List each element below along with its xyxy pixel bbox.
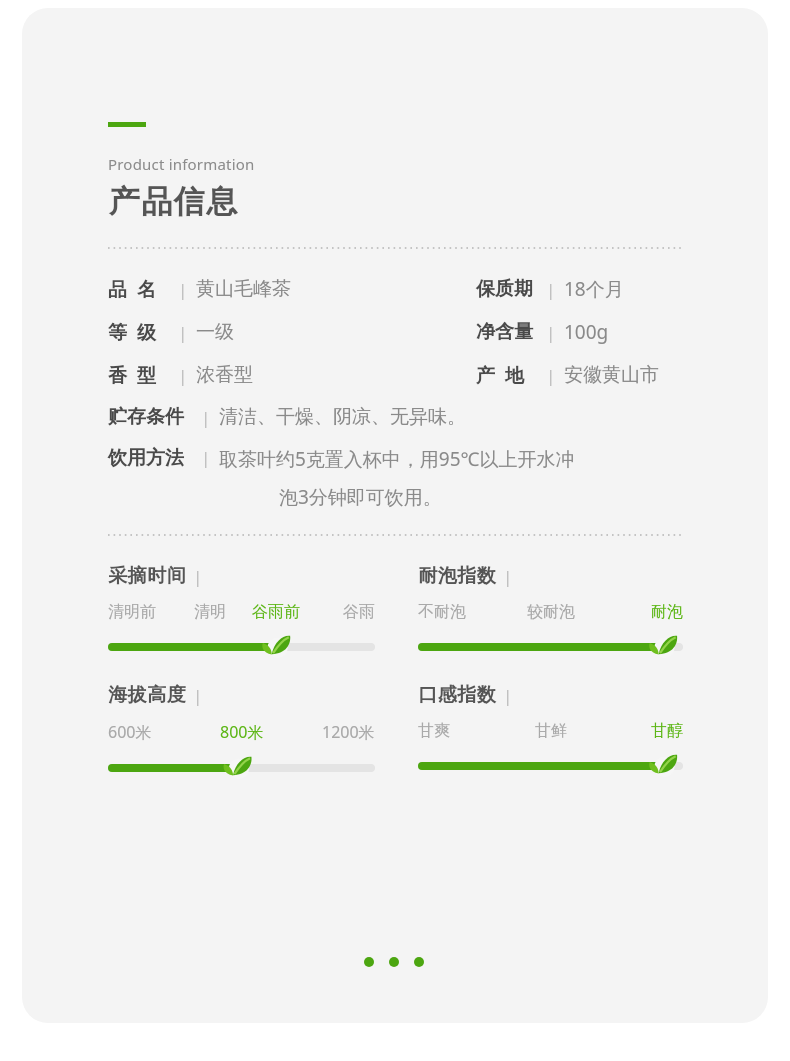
staticText: 耐泡 [651, 602, 683, 622]
staticText: | [193, 684, 203, 707]
button[interactable]: 口感指数 [418, 683, 683, 776]
staticText: Product information [108, 154, 255, 174]
button[interactable]: 产 地 [476, 362, 659, 388]
button[interactable]: 海拔高度 [108, 683, 375, 778]
button[interactable]: 香 型 [108, 362, 253, 388]
staticText: 安徽黄山市 [564, 363, 659, 387]
staticText: 产 地 [476, 362, 524, 388]
button[interactable]: 品 名 [108, 276, 291, 302]
staticText: 不耐泡 [418, 602, 466, 622]
staticText: 产品信息 [108, 182, 238, 221]
button[interactable]: 等 级 [108, 319, 234, 345]
staticText: 饮用方法 [108, 446, 184, 470]
staticText: 海拔高度 [108, 683, 186, 707]
staticText: 口感指数 [418, 683, 496, 707]
staticText: 甘爽 [418, 721, 450, 741]
staticText: | [503, 565, 513, 588]
button[interactable]: 饮用方法 [108, 446, 575, 510]
button[interactable]: 保质期 [476, 276, 624, 302]
staticText: 香 型 [108, 362, 156, 388]
staticText: | [201, 406, 211, 429]
staticText: 等 级 [108, 319, 156, 345]
staticText: 清明 [194, 602, 226, 622]
staticText: 谷雨前 [252, 602, 300, 622]
staticText: 一级 [196, 320, 234, 344]
staticText: | [546, 278, 556, 301]
button[interactable]: More [360, 953, 428, 971]
staticText: 净含量 [476, 320, 533, 344]
staticText: 1200米 [322, 721, 375, 743]
staticText: 采摘时间 [108, 564, 186, 588]
staticText: 100g [564, 319, 609, 345]
staticText: 泡3分钟即可饮用。 [279, 484, 442, 510]
staticText: | [546, 364, 556, 387]
staticText: | [178, 278, 188, 301]
staticText: | [546, 321, 556, 344]
staticText: | [201, 446, 211, 469]
staticText: | [193, 565, 203, 588]
staticText: 黄山毛峰茶 [196, 277, 291, 301]
staticText: 800米 [220, 721, 264, 743]
button[interactable]: 贮存条件 [108, 405, 466, 429]
button[interactable]: 净含量 [476, 319, 609, 345]
staticText: 较耐泡 [527, 602, 575, 622]
staticText: 浓香型 [196, 363, 253, 387]
staticText: | [178, 364, 188, 387]
staticText: 贮存条件 [108, 405, 184, 429]
staticText: 清明前 [108, 602, 156, 622]
staticText: 甘醇 [651, 721, 683, 741]
staticText: 甘鲜 [535, 721, 567, 741]
button[interactable]: 耐泡指数 [418, 564, 683, 657]
staticText: 取茶叶约5克置入杯中，用95℃以上开水冲 [219, 446, 575, 472]
staticText: 清洁、干燥、阴凉、无异味。 [219, 405, 466, 429]
staticText: | [178, 321, 188, 344]
staticText: 18个月 [564, 276, 624, 302]
staticText: | [503, 684, 513, 707]
staticText: 600米 [108, 721, 152, 743]
staticText: 品 名 [108, 276, 156, 302]
staticText: 保质期 [476, 277, 533, 301]
staticText: 耐泡指数 [418, 564, 496, 588]
staticText: 谷雨 [343, 602, 375, 622]
button[interactable]: 采摘时间 [108, 564, 375, 657]
